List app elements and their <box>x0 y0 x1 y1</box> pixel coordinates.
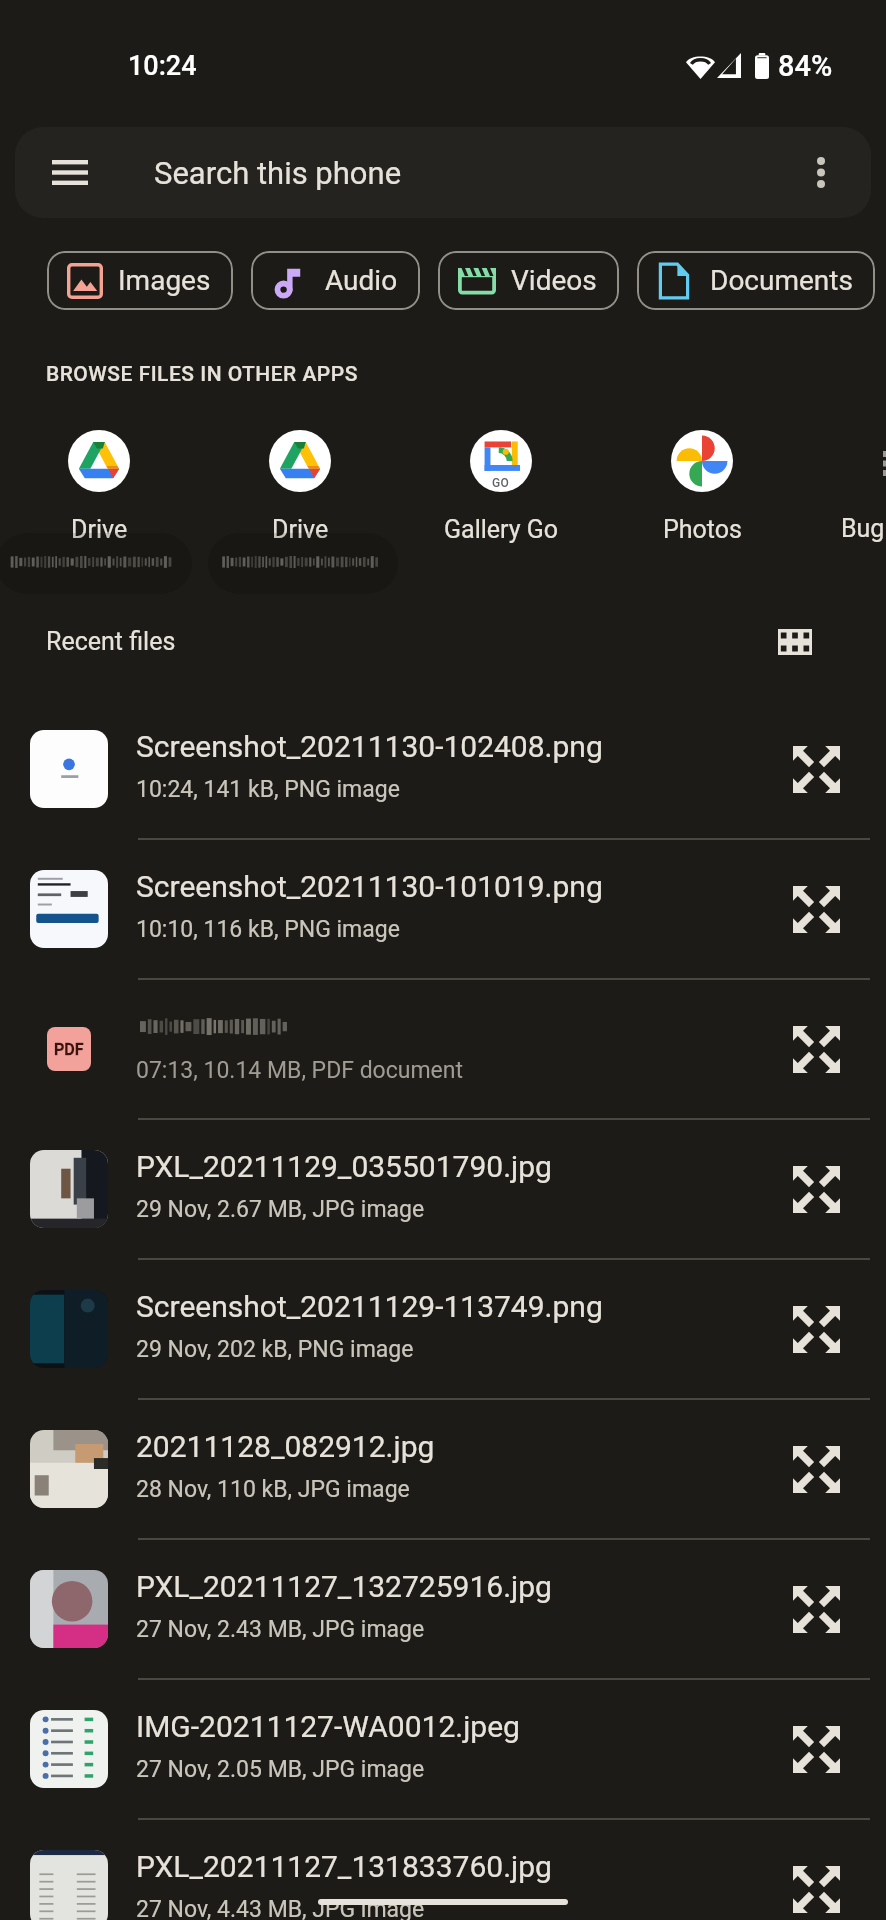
staticText: GO <box>492 476 510 490</box>
staticText: Drive <box>272 515 329 544</box>
staticText: Gallery Go <box>444 515 559 544</box>
staticText: 29 Nov, 2.67 MB, JPG image <box>136 1196 425 1223</box>
staticText: 10:24, 141 kB, PNG image <box>136 776 400 803</box>
staticText: Screenshot_20211130-102408.png <box>136 729 603 764</box>
button[interactable]: Screenshot_20211130-102408.png <box>0 699 886 839</box>
staticText: 28 Nov, 110 kB, JPG image <box>136 1476 410 1503</box>
button[interactable]: Photos <box>602 425 802 545</box>
staticText: Documents <box>710 264 853 297</box>
staticText: PXL_20211127_131833760.jpg <box>136 1849 552 1884</box>
staticText: 27 Nov, 2.43 MB, JPG image <box>136 1616 425 1643</box>
button[interactable]: Expand <box>766 1679 886 1819</box>
button[interactable]: Expand <box>766 979 886 1119</box>
other: Open navigation drawer <box>52 160 88 185</box>
button[interactable]: 20211128_082912.jpg <box>0 1399 886 1539</box>
staticText: PDF <box>54 1040 84 1059</box>
staticText: Bug report <box>841 514 886 543</box>
button[interactable]: IMG-20211127-WA0012.jpeg <box>0 1679 886 1819</box>
staticText: 10:10, 116 kB, PNG image <box>136 916 400 943</box>
button[interactable]: PXL_20211129_035501790.jpg <box>0 1119 886 1259</box>
button[interactable]: Expand <box>766 1819 886 1920</box>
button[interactable]: Expand <box>766 1399 886 1539</box>
staticText: Screenshot_20211129-113749.png <box>136 1289 603 1324</box>
button[interactable]: Drive <box>200 425 400 545</box>
staticText: Images <box>118 264 211 297</box>
button[interactable]: Screenshot_20211130-101019.png <box>0 839 886 979</box>
staticText: 27 Nov, 2.05 MB, JPG image <box>136 1756 425 1783</box>
button[interactable]: PXL_20211127_131833760.jpg <box>0 1819 886 1920</box>
staticText: 10:24 <box>128 50 197 82</box>
staticText: Audio <box>325 264 398 297</box>
staticText: Screenshot_20211130-101019.png <box>136 869 603 904</box>
staticText: Recent files <box>46 627 176 656</box>
button[interactable]: Screenshot_20211129-113749.png <box>0 1259 886 1399</box>
button[interactable]: Expand <box>766 699 886 839</box>
button[interactable]: PXL_20211127_132725916.jpg <box>0 1539 886 1679</box>
button[interactable]: Expand <box>766 1119 886 1259</box>
staticText: PXL_20211127_132725916.jpg <box>136 1569 552 1604</box>
button[interactable]: Videos <box>438 251 619 310</box>
staticText: BROWSE FILES IN OTHER APPS <box>46 362 358 387</box>
button[interactable]: Open navigation drawer <box>15 127 871 218</box>
button[interactable]: Expand <box>766 1539 886 1679</box>
staticText: 27 Nov, 4.43 MB, JPG image <box>136 1896 425 1920</box>
button[interactable]: More apps <box>860 430 886 496</box>
staticText: IMG-20211127-WA0012.jpeg <box>136 1709 520 1744</box>
button[interactable]: Drive <box>0 425 199 545</box>
staticText: Search this phone <box>154 155 402 191</box>
staticText: PXL_20211129_035501790.jpg <box>136 1149 552 1184</box>
button[interactable]: Images <box>47 251 233 310</box>
button[interactable]: Audio <box>251 251 420 310</box>
staticText: 20211128_082912.jpg <box>136 1429 435 1464</box>
staticText: 07:13, 10.14 MB, PDF document <box>136 1057 464 1084</box>
button[interactable]: Documents <box>637 251 875 310</box>
button[interactable]: GO <box>401 425 601 545</box>
staticText: 84% <box>778 49 833 83</box>
button[interactable]: Expand <box>766 839 886 979</box>
other: More options <box>817 157 825 188</box>
staticText: Videos <box>511 264 597 297</box>
button[interactable]: Switch to grid view <box>760 607 830 677</box>
button[interactable]: PDF <box>0 979 886 1119</box>
staticText: Drive <box>71 515 128 544</box>
button[interactable]: Expand <box>766 1259 886 1399</box>
staticText: 29 Nov, 202 kB, PNG image <box>136 1336 414 1363</box>
staticText: Photos <box>663 515 742 544</box>
